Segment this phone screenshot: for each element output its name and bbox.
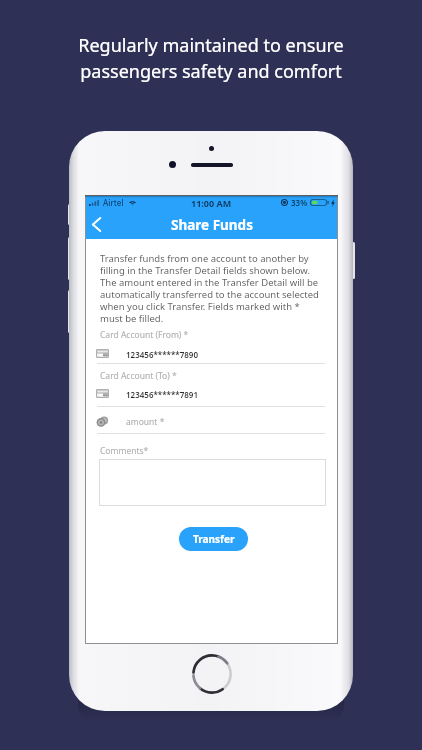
staticText: Card Account (To) *: [100, 370, 177, 382]
button[interactable]: Transfer: [179, 527, 248, 551]
staticText: Card Account (From) *: [100, 329, 189, 341]
staticText: 33%: [291, 197, 308, 208]
staticText: Regularly maintained to ensure passenger…: [78, 33, 344, 83]
button[interactable]: Back: [85, 210, 107, 239]
staticText: Airtel: [103, 197, 124, 208]
staticText: Share Funds: [171, 216, 253, 234]
staticText: Transfer: [193, 532, 235, 546]
staticText: 11:00 AM: [191, 197, 232, 209]
staticText: Transfer funds from one account to anoth…: [100, 252, 321, 325]
staticText: 123456******7890: [126, 349, 198, 360]
staticText: 123456******7891: [126, 389, 198, 400]
button[interactable]: [99, 459, 326, 506]
button[interactable]: [99, 345, 326, 364]
staticText: Comments*: [100, 445, 149, 457]
staticText: amount *: [126, 416, 165, 428]
button[interactable]: [99, 412, 326, 434]
button[interactable]: [99, 385, 326, 407]
